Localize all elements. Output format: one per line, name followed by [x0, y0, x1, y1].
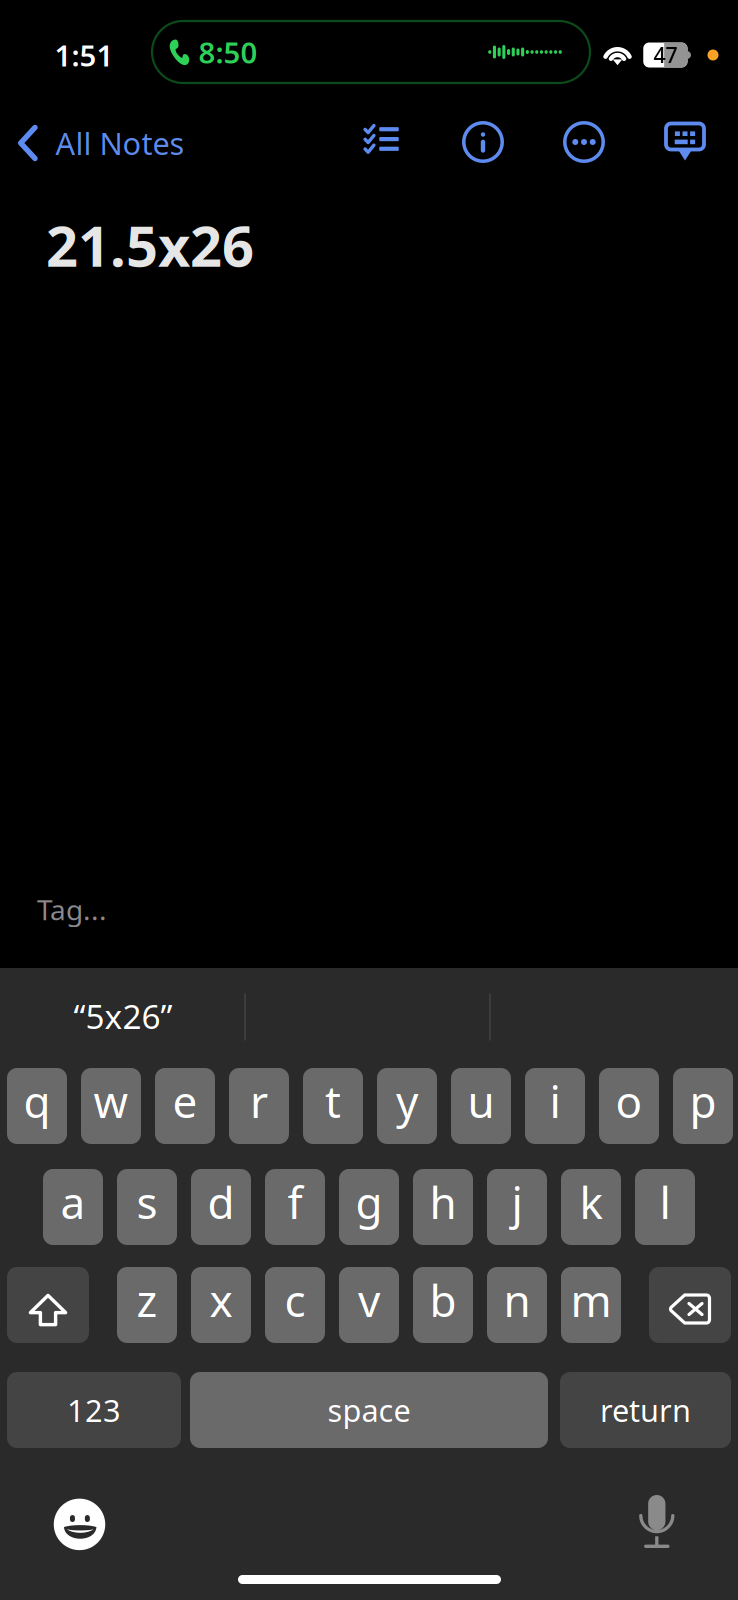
- staticText: l: [659, 1173, 670, 1231]
- button[interactable]: u: [451, 1068, 511, 1144]
- staticText: u: [467, 1072, 494, 1130]
- button[interactable]: space: [190, 1372, 548, 1448]
- staticText: a: [60, 1173, 85, 1231]
- button[interactable]: f: [265, 1169, 325, 1245]
- button[interactable]: Delete: [649, 1267, 731, 1343]
- staticText: e: [172, 1072, 197, 1130]
- staticText: r: [250, 1072, 268, 1130]
- staticText: All Notes: [55, 123, 184, 163]
- staticText: w: [93, 1072, 128, 1130]
- staticText: “5x26”: [73, 994, 172, 1038]
- button[interactable]: p: [673, 1068, 733, 1144]
- staticText: m: [570, 1271, 611, 1329]
- staticText: g: [355, 1173, 382, 1231]
- staticText: j: [511, 1173, 522, 1231]
- staticText: s: [136, 1173, 157, 1231]
- staticText: 123: [67, 1390, 121, 1430]
- button[interactable]: n: [487, 1267, 547, 1343]
- button[interactable]: y: [377, 1068, 437, 1144]
- staticText: z: [136, 1271, 157, 1329]
- staticText: 47: [653, 40, 677, 69]
- button[interactable]: Note details: [450, 109, 516, 175]
- button[interactable]: Shift: [7, 1267, 89, 1343]
- staticText: 1:51: [54, 35, 113, 74]
- button[interactable]: o: [599, 1068, 659, 1144]
- button[interactable]: return: [560, 1372, 731, 1448]
- button[interactable]: x: [191, 1267, 251, 1343]
- staticText: k: [579, 1173, 602, 1231]
- staticText: space: [327, 1390, 410, 1430]
- button[interactable]: q: [7, 1068, 67, 1144]
- staticText: i: [549, 1072, 560, 1130]
- staticText: o: [615, 1072, 642, 1130]
- staticText: n: [503, 1271, 530, 1329]
- staticText: v: [358, 1271, 380, 1329]
- button[interactable]: s: [117, 1169, 177, 1245]
- button[interactable]: z: [117, 1267, 177, 1343]
- button[interactable]: 123: [7, 1372, 181, 1448]
- button[interactable]: i: [525, 1068, 585, 1144]
- staticText: Tag...: [37, 891, 107, 928]
- staticText: 8:50: [198, 32, 257, 71]
- button[interactable]: Checklist: [347, 111, 414, 173]
- staticText: h: [429, 1173, 456, 1231]
- staticText: q: [23, 1072, 50, 1130]
- button[interactable]: h: [413, 1169, 473, 1245]
- staticText: 21.5x26: [46, 208, 254, 282]
- staticText: f: [287, 1173, 302, 1231]
- button[interactable]: v: [339, 1267, 399, 1343]
- staticText: b: [429, 1271, 456, 1329]
- button[interactable]: Dictation: [623, 1479, 691, 1564]
- button[interactable]: r: [229, 1068, 289, 1144]
- button[interactable]: w: [81, 1068, 141, 1144]
- button[interactable]: a: [43, 1169, 103, 1245]
- button[interactable]: All Notes: [7, 111, 194, 175]
- button[interactable]: b: [413, 1267, 473, 1343]
- button[interactable]: t: [303, 1068, 363, 1144]
- staticText: t: [325, 1072, 341, 1130]
- staticText: p: [689, 1072, 716, 1130]
- staticText: x: [209, 1271, 232, 1329]
- button[interactable]: c: [265, 1267, 325, 1343]
- staticText: y: [396, 1072, 418, 1130]
- button[interactable]: j: [487, 1169, 547, 1245]
- staticText: c: [284, 1271, 305, 1329]
- button[interactable]: m: [561, 1267, 621, 1343]
- button[interactable]: l: [635, 1169, 695, 1245]
- button[interactable]: k: [561, 1169, 621, 1245]
- button[interactable]: More: [551, 109, 617, 175]
- button[interactable]: Emoji: [38, 1483, 121, 1566]
- button[interactable]: e: [155, 1068, 215, 1144]
- staticText: d: [207, 1173, 234, 1231]
- button[interactable]: Hide keyboard: [654, 111, 716, 172]
- staticText: return: [600, 1390, 691, 1430]
- button[interactable]: g: [339, 1169, 399, 1245]
- button[interactable]: d: [191, 1169, 251, 1245]
